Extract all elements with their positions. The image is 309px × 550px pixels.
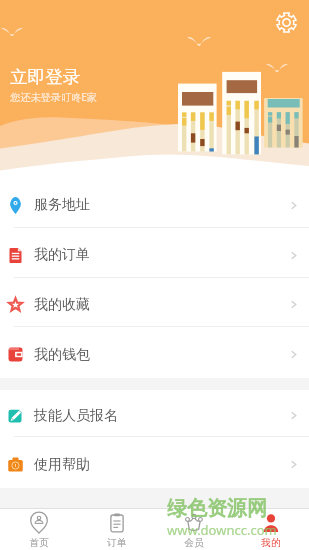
button[interactable]: 我的钱包 — [0, 327, 309, 378]
button[interactable]: 使用帮助 — [0, 437, 309, 488]
staticText: www.downcc.com — [167, 521, 277, 539]
staticText: 我的订单 — [34, 246, 90, 264]
staticText: 绿色资源网 — [167, 496, 267, 521]
button[interactable]: 技能人员报名 — [0, 390, 309, 437]
staticText: 订单 — [107, 537, 127, 549]
staticText: 您还未登录叮咚E家 — [10, 90, 98, 104]
button[interactable]: 我的收藏 — [0, 278, 309, 327]
button[interactable]: 立即登录 — [10, 66, 98, 104]
staticText: 首页 — [29, 537, 49, 549]
staticText: 会员 — [184, 537, 204, 549]
button[interactable]: 首页 — [0, 509, 78, 549]
staticText: 我的钱包 — [34, 346, 90, 364]
staticText: 我的 — [261, 537, 281, 549]
button[interactable]: 服务地址 — [0, 178, 309, 228]
staticText: 立即登录 — [10, 66, 81, 88]
button[interactable]: 会员 — [155, 509, 232, 549]
button[interactable]: 我的订单 — [0, 228, 309, 278]
staticText: 服务地址 — [34, 196, 90, 214]
staticText: 我的收藏 — [34, 296, 90, 314]
button[interactable]: 订单 — [78, 509, 155, 549]
staticText: 技能人员报名 — [34, 407, 118, 425]
button[interactable]: 我的 — [232, 509, 309, 549]
button[interactable]: 设置 — [273, 9, 299, 35]
staticText: 使用帮助 — [34, 456, 90, 474]
